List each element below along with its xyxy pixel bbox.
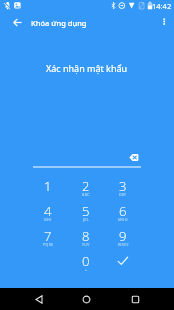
button[interactable]	[156, 12, 172, 33]
staticText: 1	[44, 177, 52, 192]
button[interactable]	[8, 13, 26, 32]
button[interactable]	[28, 288, 50, 310]
button[interactable]	[124, 288, 146, 310]
button[interactable]: 0	[67, 252, 105, 276]
staticText: Khóa ứng dụng	[31, 18, 87, 28]
staticText: 5	[82, 202, 90, 217]
staticText: +	[85, 267, 88, 272]
button[interactable]: 1	[29, 177, 67, 201]
staticText: Xác nhận mật khẩu	[46, 62, 128, 74]
staticText: PQRS	[43, 242, 54, 247]
staticText: 6	[119, 202, 127, 217]
staticText: TUV	[82, 242, 90, 247]
button[interactable]: 5	[67, 202, 105, 226]
button[interactable]: 2	[67, 177, 105, 201]
staticText: 7	[44, 227, 52, 242]
staticText: 8	[82, 227, 90, 242]
button[interactable]: 7	[29, 227, 67, 251]
button[interactable]	[124, 153, 144, 169]
staticText: ABC	[82, 192, 90, 197]
staticText: 14:42	[152, 1, 172, 11]
staticText: MNO	[118, 217, 128, 222]
staticText: DEF	[119, 192, 127, 197]
button[interactable]: 3	[104, 177, 142, 201]
staticText: GHI	[44, 217, 52, 222]
staticText: 3	[119, 177, 127, 192]
button[interactable]: 4	[29, 202, 67, 226]
staticText: 4	[44, 202, 52, 217]
button[interactable]: 8	[67, 227, 105, 251]
staticText: 9	[119, 227, 127, 242]
button[interactable]	[75, 288, 97, 310]
staticText: 0	[82, 252, 90, 267]
staticText: 2	[82, 177, 90, 192]
button[interactable]: 9	[104, 227, 142, 251]
button[interactable]: 6	[104, 202, 142, 226]
staticText: JKL	[83, 217, 90, 222]
staticText: WXYZ	[118, 242, 129, 247]
button[interactable]	[104, 249, 142, 273]
